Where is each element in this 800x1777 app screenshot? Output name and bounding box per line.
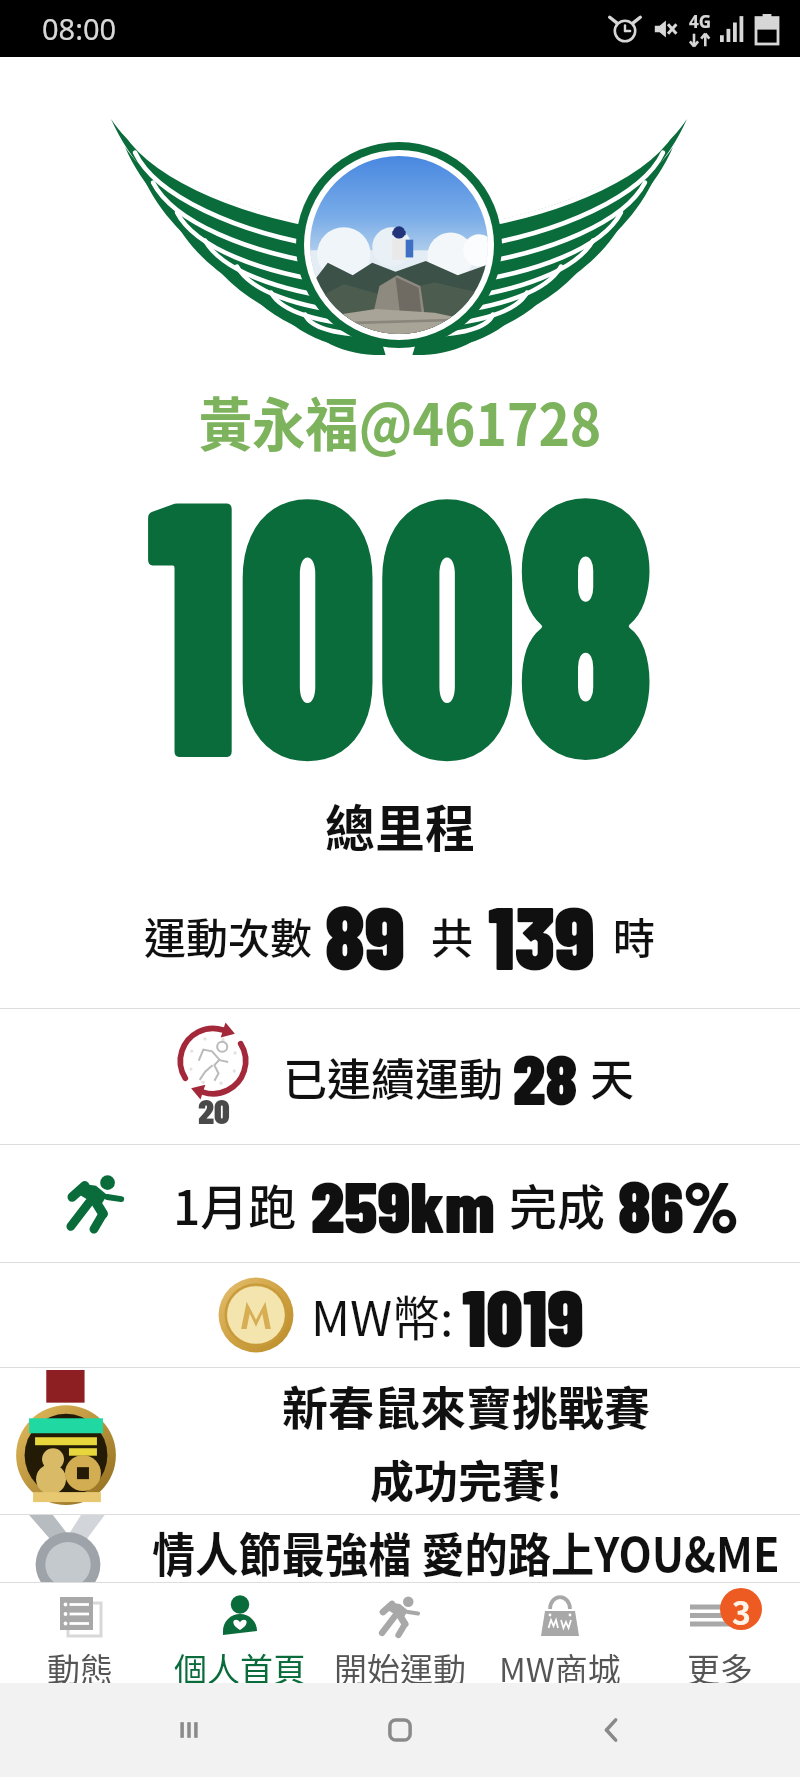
staticText: 完成 bbox=[509, 1169, 606, 1239]
staticText: 新春鼠來寶挑戰賽 bbox=[282, 1372, 650, 1439]
staticText: 1019 bbox=[462, 1267, 584, 1363]
button[interactable]: 更多 bbox=[640, 1583, 800, 1683]
staticText: 1月跑 bbox=[173, 1169, 297, 1239]
staticText: 情人節最強檔 愛的路上YOU&ME bbox=[152, 1517, 780, 1584]
staticText: 個人首頁 bbox=[174, 1644, 306, 1683]
staticText: 08:00 bbox=[42, 9, 117, 48]
staticText: 開始運動 bbox=[334, 1644, 466, 1683]
staticText: 動態 bbox=[47, 1644, 113, 1683]
staticText: 3 bbox=[732, 1588, 751, 1630]
button[interactable]: 20 bbox=[0, 1009, 800, 1144]
button[interactable]: MW幣: bbox=[0, 1263, 800, 1367]
staticText: 運動次數 bbox=[144, 905, 313, 966]
button[interactable]: Home bbox=[377, 1707, 423, 1753]
staticText: 成功完賽! bbox=[370, 1447, 563, 1511]
button[interactable]: 開始運動 bbox=[320, 1583, 480, 1683]
staticText: 時 bbox=[613, 905, 656, 966]
button[interactable]: 1月跑 bbox=[0, 1145, 800, 1262]
staticText: 28 bbox=[513, 1035, 578, 1119]
staticText: 已連續運動 bbox=[283, 1045, 503, 1109]
button[interactable]: 動態 bbox=[0, 1583, 160, 1683]
staticText: 4G bbox=[689, 10, 712, 33]
staticText: 89 bbox=[325, 882, 405, 988]
button[interactable]: 情人節最強檔 愛的路上YOU&ME bbox=[0, 1515, 800, 1582]
staticText: 139 bbox=[488, 882, 595, 988]
staticText: 86% bbox=[618, 1161, 739, 1247]
button[interactable]: 新春鼠來寶挑戰賽 bbox=[0, 1368, 800, 1514]
staticText: 20 bbox=[168, 1090, 260, 1131]
staticText: 黃永福@461728 bbox=[32, 379, 768, 463]
staticText: MW商城 bbox=[499, 1644, 621, 1683]
staticText: 天 bbox=[590, 1045, 634, 1109]
button[interactable]: Back bbox=[589, 1707, 635, 1753]
staticText: MW幣: bbox=[311, 1280, 454, 1350]
staticText: 總里程 bbox=[0, 789, 800, 861]
button[interactable]: Recents bbox=[166, 1707, 212, 1753]
staticText: 1008 bbox=[64, 395, 736, 955]
staticText: 更多 bbox=[687, 1644, 753, 1683]
button[interactable]: 個人首頁 bbox=[160, 1583, 320, 1683]
staticText: 259km bbox=[311, 1161, 495, 1247]
staticText: 共 bbox=[431, 905, 474, 966]
button[interactable]: MW商城 bbox=[480, 1583, 640, 1683]
